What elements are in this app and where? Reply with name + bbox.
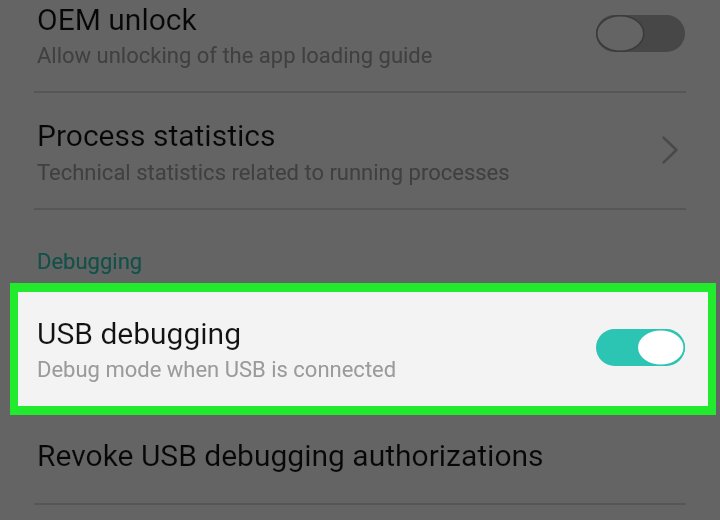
- button[interactable]: USB debugging: [0, 289, 720, 406]
- staticText: Revoke USB debugging authorizations: [37, 438, 544, 473]
- button[interactable]: OEM unlock switch, off: [596, 15, 685, 52]
- button[interactable]: Revoke USB debugging authorizations: [0, 406, 720, 503]
- staticText: Debug mode when USB is connected: [37, 357, 397, 383]
- staticText: USB debugging: [37, 316, 242, 351]
- staticText: OEM unlock: [37, 2, 197, 37]
- staticText: Technical statistics related to running …: [37, 160, 510, 186]
- button[interactable]: USB debugging switch, on: [596, 329, 685, 366]
- other: Open: [663, 137, 677, 163]
- staticText: Debugging: [37, 249, 143, 275]
- staticText: Allow unlocking of the app loading guide: [37, 43, 433, 69]
- button[interactable]: Process statistics: [0, 92, 720, 209]
- button[interactable]: OEM unlock: [0, 0, 720, 92]
- staticText: Process statistics: [37, 118, 276, 153]
